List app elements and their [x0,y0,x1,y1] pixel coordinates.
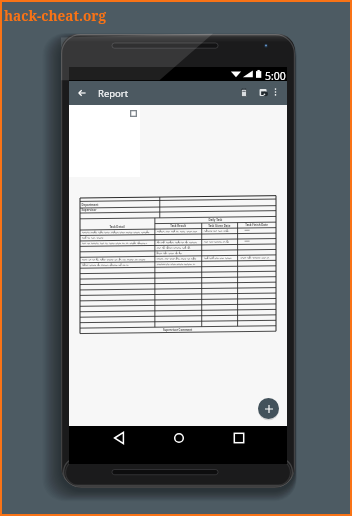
button[interactable]: Notes [237,85,251,99]
button[interactable]: Add [258,398,279,419]
button[interactable]: Navigate up [74,85,90,101]
staticText: Report [98,87,129,100]
staticText: 5:00 [265,69,286,83]
button[interactable]: Recent apps [228,427,250,449]
button[interactable]: Home [168,427,190,449]
button[interactable]: Save [256,85,270,99]
button[interactable]: Back [108,427,130,449]
button[interactable]: More options [268,85,282,99]
staticText: hack-cheat.org [4,6,106,25]
